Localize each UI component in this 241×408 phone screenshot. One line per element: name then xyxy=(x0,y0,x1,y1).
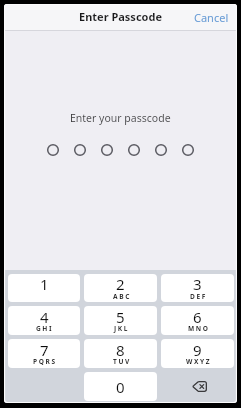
button[interactable]: 0 xyxy=(84,372,157,401)
button[interactable]: 6 xyxy=(161,306,234,335)
staticText: MNO xyxy=(188,324,210,333)
staticText: 2 xyxy=(116,274,125,294)
staticText: Cancel xyxy=(194,10,229,25)
button[interactable]: 8 xyxy=(84,339,157,368)
button[interactable]: 3 xyxy=(161,274,234,302)
staticText: 9 xyxy=(193,340,202,360)
button[interactable]: 4 xyxy=(8,306,80,335)
staticText: Enter Passcode xyxy=(79,9,162,24)
button[interactable]: 1 xyxy=(8,274,80,302)
button[interactable]: 9 xyxy=(161,339,234,368)
staticText: JKL xyxy=(114,324,130,333)
staticText: 1 xyxy=(40,274,49,294)
staticText: PQRS xyxy=(33,357,57,366)
staticText: 3 xyxy=(193,274,202,294)
staticText: Enter your passcode xyxy=(70,111,171,125)
staticText: 5 xyxy=(116,307,125,327)
staticText: GHI xyxy=(36,324,54,333)
staticText: 4 xyxy=(40,307,49,327)
button[interactable]: Delete xyxy=(161,372,234,401)
staticText: 6 xyxy=(193,307,202,327)
staticText: DEF xyxy=(190,292,207,301)
button[interactable]: Cancel xyxy=(185,6,237,29)
staticText: 8 xyxy=(116,340,125,360)
staticText: 7 xyxy=(40,340,49,360)
staticText: ABC xyxy=(113,292,131,301)
staticText: TUV xyxy=(113,357,131,366)
staticText: WXYZ xyxy=(186,357,212,366)
button[interactable]: 2 xyxy=(84,274,157,302)
button[interactable]: 5 xyxy=(84,306,157,335)
button[interactable]: 7 xyxy=(8,339,80,368)
staticText: 0 xyxy=(116,377,125,397)
